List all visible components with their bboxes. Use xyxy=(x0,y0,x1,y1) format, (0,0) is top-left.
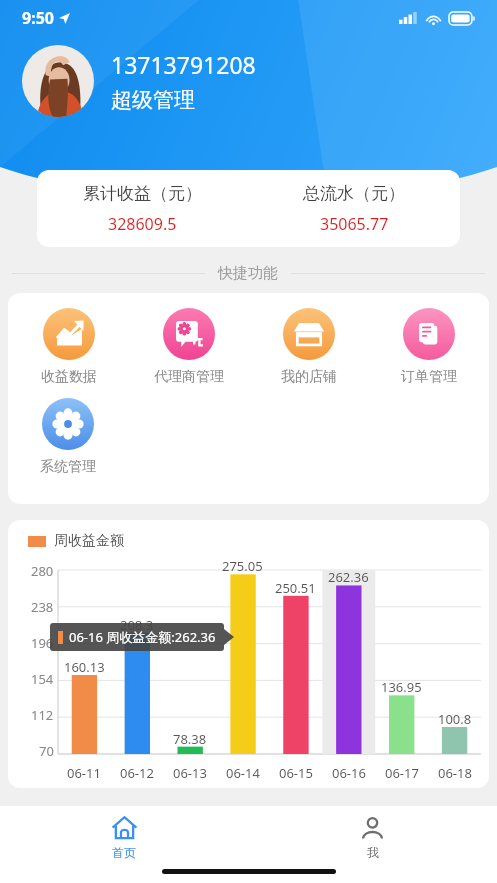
button[interactable]: 累计收益（元） xyxy=(37,183,248,235)
staticText: 238 xyxy=(31,598,54,616)
staticText: 收益数据 xyxy=(41,368,97,386)
button[interactable]: 订单管理 xyxy=(369,308,489,386)
staticText: 代理商管理 xyxy=(154,368,224,386)
staticText: 06-12 xyxy=(120,764,154,782)
button[interactable]: 累计收益（元） xyxy=(37,170,460,247)
staticText: 周收益金额 xyxy=(54,532,124,550)
staticText: 9:50 xyxy=(22,7,54,29)
button[interactable]: 收益数据 xyxy=(8,308,129,386)
staticText: 06-16 周收益金额:262.36 xyxy=(69,628,216,646)
button[interactable]: 系统管理 xyxy=(8,398,128,476)
button[interactable]: 我的店铺 xyxy=(249,308,369,386)
staticText: 112 xyxy=(31,706,54,724)
button[interactable]: 首页 xyxy=(0,806,248,860)
staticText: 总流水（元） xyxy=(303,183,405,204)
staticText: 160.13 xyxy=(64,658,105,676)
button[interactable]: Profile avatar xyxy=(22,45,94,117)
staticText: 我的店铺 xyxy=(281,368,337,386)
staticText: 订单管理 xyxy=(401,368,457,386)
staticText: 280 xyxy=(31,562,54,580)
staticText: 154 xyxy=(31,670,54,688)
staticText: 250.51 xyxy=(275,579,316,597)
staticText: 首页 xyxy=(112,845,136,860)
staticText: 快捷功能 xyxy=(218,264,278,283)
staticText: 13713791208 xyxy=(111,49,256,80)
button[interactable]: 代理商管理 xyxy=(129,308,249,386)
staticText: 06-14 xyxy=(226,764,260,782)
staticText: 06-11 xyxy=(67,764,101,782)
staticText: 累计收益（元） xyxy=(83,183,202,204)
staticText: 06-16 xyxy=(332,764,366,782)
staticText: 78.38 xyxy=(173,730,207,748)
staticText: 35065.77 xyxy=(320,213,389,235)
staticText: 系统管理 xyxy=(40,458,96,476)
staticText: 208.3 xyxy=(120,616,154,634)
staticText: 70 xyxy=(39,742,54,760)
staticText: 06-15 xyxy=(279,764,313,782)
staticText: 超级管理 xyxy=(111,87,195,113)
staticText: 328609.5 xyxy=(108,213,177,235)
staticText: 262.36 xyxy=(328,568,369,586)
staticText: 100.8 xyxy=(438,710,472,728)
staticText: 06-17 xyxy=(385,764,419,782)
staticText: 275.05 xyxy=(222,557,263,575)
staticText: 06-18 xyxy=(438,764,472,782)
button[interactable]: 我 xyxy=(248,806,497,860)
staticText: 06-13 xyxy=(173,764,207,782)
staticText: 136.95 xyxy=(381,678,422,696)
staticText: 196 xyxy=(31,634,54,652)
staticText: 我 xyxy=(367,845,379,860)
button[interactable]: 总流水（元） xyxy=(248,183,460,235)
